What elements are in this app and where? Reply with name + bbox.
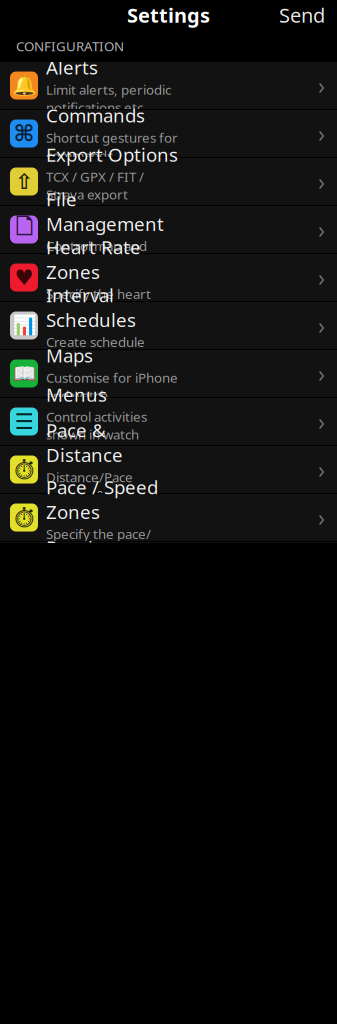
staticText: Pausing <box>46 535 116 560</box>
staticText: Pace & Distance <box>46 418 123 467</box>
staticText: Limit alerts, periodic notifications etc… <box>46 81 171 116</box>
staticText: › <box>318 262 325 292</box>
staticText: 📖 <box>12 363 35 384</box>
staticText: ♥ <box>14 265 33 290</box>
button[interactable]: ♥ <box>0 254 337 302</box>
staticText: 🔔 <box>11 74 36 97</box>
staticText: Export Options <box>46 142 178 167</box>
staticText: CONFIGURATION <box>16 37 124 55</box>
staticText: ⏱ <box>11 458 36 481</box>
staticText: › <box>318 454 325 484</box>
button[interactable]: 🔔 <box>0 62 337 110</box>
staticText: Maps <box>46 343 93 368</box>
staticText: Settings <box>127 2 210 28</box>
staticText: ⌘ <box>13 121 34 146</box>
staticText: Alerts <box>46 55 98 80</box>
button[interactable]: ⏱ <box>0 446 337 494</box>
staticText: TCX / GPX / FIT / Strava export options. <box>46 168 144 221</box>
staticText: › <box>318 166 325 196</box>
staticText: › <box>318 310 325 340</box>
staticText: Distance/Pace sources & pace settings. <box>46 468 138 521</box>
staticText: Control activities shown in watch menus. <box>46 408 147 461</box>
staticText: Pace / Speed Zones <box>46 474 158 524</box>
staticText: Menus <box>46 382 107 407</box>
button[interactable]: ⇧ <box>0 158 337 206</box>
staticText: 📊 <box>11 314 36 337</box>
staticText: › <box>318 118 325 148</box>
staticText: Commands <box>46 103 145 128</box>
button[interactable]: 📖 <box>0 350 337 398</box>
staticText: 🗋 <box>15 212 32 247</box>
button[interactable]: 📊 <box>0 302 337 350</box>
staticText: › <box>318 214 325 244</box>
button[interactable]: ⌘ <box>0 110 337 158</box>
staticText: › <box>318 358 325 388</box>
staticText: Specify the heart rates for each zone. <box>46 285 168 320</box>
staticText: ⏱ <box>11 506 36 529</box>
staticText: File Management <box>46 186 164 236</box>
staticText: ☰ <box>14 409 33 434</box>
staticText: › <box>318 406 325 436</box>
button[interactable]: ☰ <box>0 398 337 446</box>
staticText: ⇧ <box>15 169 33 194</box>
staticText: Interval Schedules <box>46 282 136 332</box>
staticText: › <box>318 502 325 532</box>
staticText: › <box>318 70 325 100</box>
button[interactable]: ⏸ <box>0 542 337 590</box>
staticText: Control map and settings files. <box>46 237 147 272</box>
button[interactable]: ⏱ <box>0 494 337 542</box>
button[interactable]: Send <box>267 0 337 34</box>
staticText: Customise for iPhone and watch. <box>46 369 178 404</box>
staticText: Heart Rate Zones <box>46 234 141 284</box>
staticText: Specify the pace/speed for each zone. <box>46 525 175 560</box>
staticText: Send <box>279 2 325 28</box>
button[interactable]: 🗋 <box>0 206 337 254</box>
staticText: Shortcut gestures for commands <box>46 129 178 164</box>
staticText: Create schedule plans for workouts. <box>46 333 165 368</box>
